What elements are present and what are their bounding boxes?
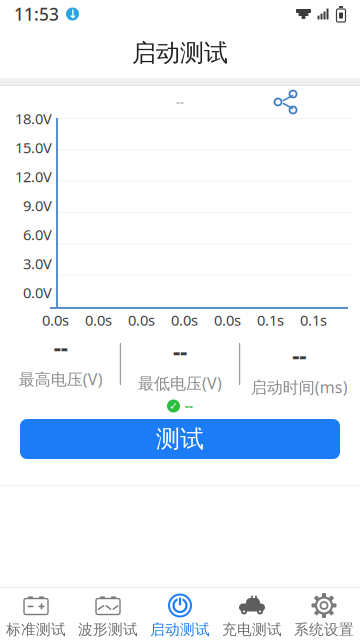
staticText: 0.1s [257, 310, 284, 330]
staticText: 标准测试 [6, 620, 66, 638]
button[interactable]: 系统设置 [288, 588, 360, 643]
staticText: 9.0V [23, 196, 52, 215]
staticText: 6.0V [23, 225, 52, 244]
button[interactable]: 标准测试 [0, 588, 72, 643]
staticText: 充电测试 [222, 620, 282, 638]
staticText: ↓ [67, 7, 77, 21]
button[interactable]: 启动测试 [144, 588, 216, 643]
staticText: 测试 [156, 424, 204, 454]
staticText: -- [54, 332, 68, 362]
staticText: -- [292, 340, 306, 370]
staticText: 最高电压(V) [19, 368, 103, 390]
button[interactable]: 波形测试 [72, 588, 144, 643]
staticText: 系统设置 [294, 620, 354, 638]
staticText: 0.1s [300, 310, 327, 330]
button[interactable]: 充电测试 [216, 588, 288, 643]
staticText: 12.0V [15, 167, 52, 186]
staticText: 最低电压(V) [138, 372, 222, 394]
staticText: 启动时间(ms) [251, 376, 348, 398]
staticText: 0.0V [23, 283, 52, 302]
button[interactable]: Share [268, 87, 302, 117]
staticText: 0.0s [171, 310, 198, 330]
staticText: 波形测试 [78, 620, 138, 638]
staticText: 0.0s [128, 310, 155, 330]
button[interactable]: 测试 [20, 419, 340, 459]
staticText: 0.0s [85, 310, 112, 330]
staticText: 3.0V [23, 254, 52, 273]
staticText: 0.0s [214, 310, 241, 330]
staticText: -- [173, 336, 187, 366]
staticText: 0.0s [42, 310, 69, 330]
staticText: 15.0V [15, 138, 52, 157]
staticText: 18.0V [15, 109, 52, 128]
staticText: 启动测试 [132, 38, 228, 68]
staticText: 11:53 [14, 2, 59, 25]
staticText: 启动测试 [150, 620, 210, 638]
staticText: -- [176, 94, 184, 110]
staticText: -- [185, 398, 193, 414]
staticText: ✓ [169, 400, 178, 412]
